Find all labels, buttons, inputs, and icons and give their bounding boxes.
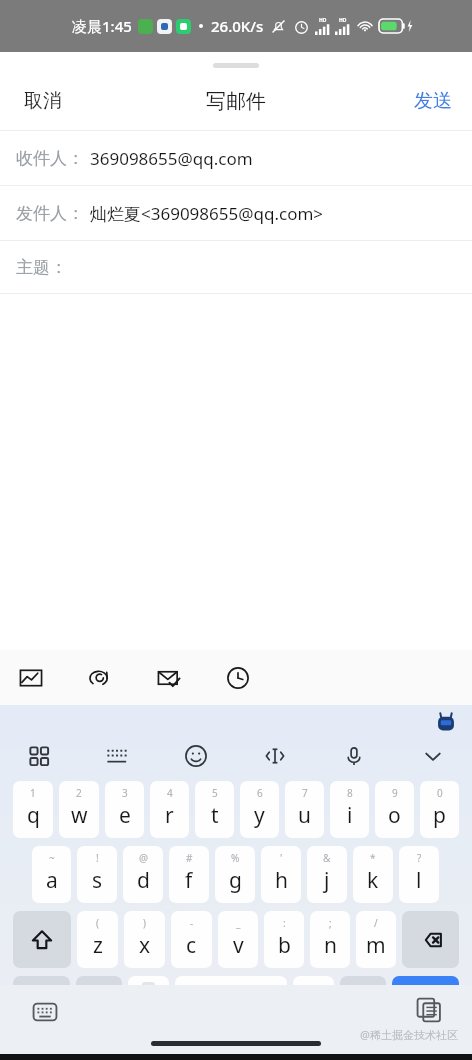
staticText: o: [388, 801, 401, 830]
button[interactable]: Recents: [412, 993, 446, 1027]
staticText: 1: [30, 786, 36, 800]
staticText: k: [367, 866, 379, 895]
button[interactable]: 。: [293, 976, 334, 1033]
staticText: b: [278, 931, 291, 960]
button[interactable]: Keyboard layout: [78, 735, 156, 777]
staticText: (: [96, 916, 99, 930]
staticText: u: [298, 801, 311, 830]
staticText: q: [27, 801, 40, 830]
button[interactable]: Shift: [13, 911, 71, 968]
button[interactable]: !: [77, 846, 117, 903]
staticText: #: [186, 851, 193, 865]
staticText: 主题：: [16, 257, 67, 278]
button[interactable]: 7: [285, 781, 324, 838]
staticText: ~: [49, 851, 55, 865]
staticText: z: [93, 931, 103, 960]
button[interactable]: /: [356, 911, 396, 968]
button[interactable]: Text cursor: [235, 735, 314, 777]
button[interactable]: (: [77, 911, 118, 968]
button[interactable]: Insert image: [14, 661, 48, 695]
button[interactable]: &: [307, 846, 347, 903]
button[interactable]: Backspace: [402, 911, 459, 968]
button[interactable]: 发送: [394, 77, 472, 125]
staticText: ;: [329, 916, 332, 930]
button[interactable]: ): [124, 911, 165, 968]
staticText: HD: [319, 17, 327, 24]
staticText: y: [254, 801, 265, 830]
button[interactable]: 5: [195, 781, 234, 838]
button[interactable]: Keyboard: [28, 995, 62, 1029]
button[interactable]: Hide keyboard: [393, 735, 472, 777]
button[interactable]: 收件人：: [0, 131, 472, 185]
staticText: 6: [257, 786, 263, 800]
button[interactable]: 6: [240, 781, 279, 838]
button[interactable]: 取消: [0, 77, 86, 125]
button[interactable]: 8: [330, 781, 369, 838]
staticText: %: [231, 851, 240, 865]
button[interactable]: 发件人：: [0, 186, 472, 240]
button[interactable]: :: [264, 911, 304, 968]
staticText: v: [233, 931, 244, 960]
staticText: n: [324, 931, 337, 960]
staticText: 发件人：: [16, 203, 84, 224]
staticText: 4: [167, 786, 173, 800]
button[interactable]: -: [171, 911, 212, 968]
button[interactable]: ?: [399, 846, 439, 903]
staticText: 2: [76, 786, 82, 800]
staticText: ): [143, 916, 146, 930]
button[interactable]: Apps: [0, 735, 78, 777]
staticText: 26.0K/s: [211, 16, 264, 36]
staticText: _: [236, 916, 241, 930]
staticText: @稀土掘金技术社区: [360, 1027, 458, 1042]
staticText: 写邮件: [206, 89, 266, 114]
staticText: 收件人：: [16, 148, 84, 169]
button[interactable]: ~: [32, 846, 71, 903]
button[interactable]: %: [215, 846, 255, 903]
button[interactable]: Mail template: [152, 661, 186, 695]
staticText: 3: [122, 786, 128, 800]
staticText: *: [370, 851, 376, 865]
button[interactable]: Space: [175, 976, 287, 1033]
button[interactable]: _: [218, 911, 258, 968]
button[interactable]: 4: [150, 781, 189, 838]
staticText: @: [139, 851, 148, 865]
staticText: /: [374, 916, 378, 930]
button[interactable]: 3: [105, 781, 144, 838]
button[interactable]: ;: [310, 911, 350, 968]
staticText: f: [185, 866, 193, 895]
staticText: 9: [392, 786, 398, 800]
staticText: g: [229, 866, 242, 895]
button[interactable]: *: [353, 846, 393, 903]
staticText: ?: [417, 851, 422, 865]
staticText: 5: [212, 786, 218, 800]
staticText: 0: [437, 786, 443, 800]
button[interactable]: #: [169, 846, 209, 903]
button[interactable]: ': [261, 846, 301, 903]
button[interactable]: QQ assistant: [434, 711, 458, 735]
button[interactable]: 下一步: [392, 976, 459, 1033]
button[interactable]: 中: [340, 976, 386, 1033]
button[interactable]: @: [123, 846, 163, 903]
button[interactable]: A: [128, 976, 169, 1033]
button[interactable]: 0: [420, 781, 459, 838]
staticText: 7: [302, 786, 308, 800]
button[interactable]: 2: [59, 781, 99, 838]
staticText: &: [323, 851, 331, 865]
button[interactable]: Schedule send: [221, 661, 255, 695]
button[interactable]: 主题：: [0, 241, 472, 293]
button[interactable]: !?#: [13, 976, 70, 1033]
button[interactable]: 123: [76, 976, 122, 1033]
staticText: w: [71, 801, 88, 830]
button[interactable]: Voice note: [83, 661, 117, 695]
button[interactable]: 9: [375, 781, 414, 838]
button[interactable]: Emoji: [156, 735, 235, 777]
button[interactable]: Voice input: [314, 735, 393, 777]
staticText: t: [211, 801, 219, 830]
staticText: 8: [347, 786, 353, 800]
staticText: !?#: [29, 992, 54, 1017]
button[interactable]: 1: [13, 781, 53, 838]
